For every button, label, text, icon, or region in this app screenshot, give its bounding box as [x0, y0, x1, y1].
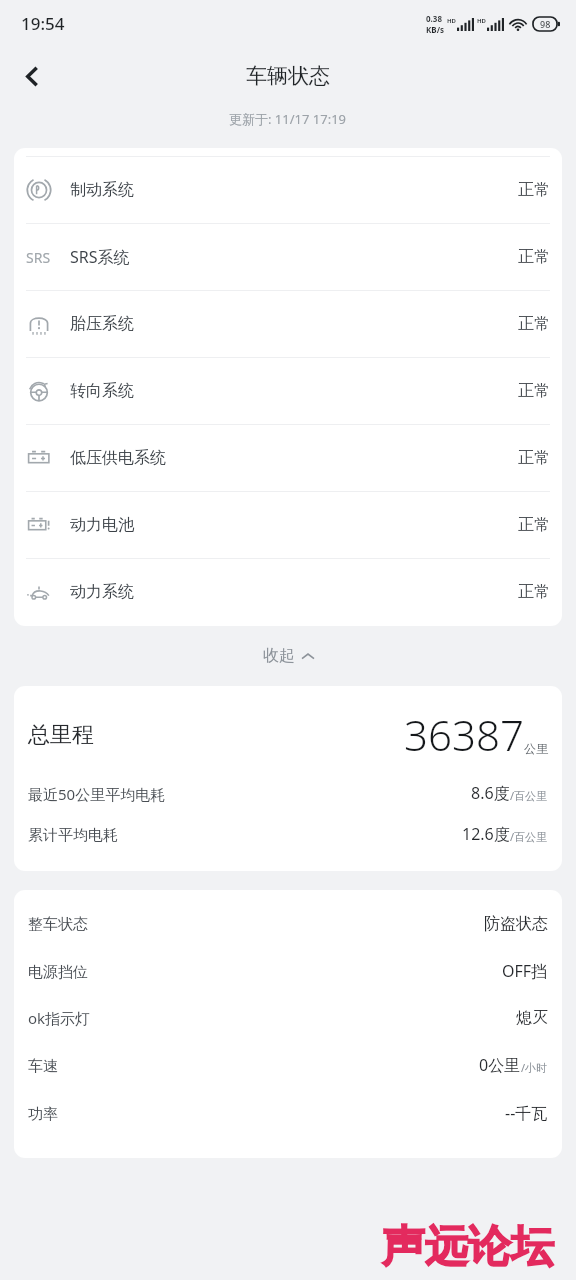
staticText: 更新于: 11/17 17:19 — [229, 110, 347, 128]
staticText: 正常 — [518, 515, 550, 535]
staticText: 整车状态 — [28, 915, 88, 934]
staticText: HD — [477, 17, 486, 25]
staticText: 功率 — [28, 1105, 58, 1124]
staticText: 正常 — [518, 582, 550, 602]
staticText: 36387 — [404, 706, 524, 763]
button[interactable]: Back — [7, 51, 57, 101]
button[interactable]: 转向系统 — [14, 358, 562, 424]
staticText: 正常 — [518, 247, 550, 267]
staticText: 最近50公里平均电耗 — [28, 784, 166, 804]
staticText: /百公里 — [510, 829, 548, 844]
staticText: HD — [447, 17, 456, 25]
button[interactable]: 收起 — [245, 637, 332, 675]
staticText: 正常 — [518, 180, 550, 200]
button[interactable]: 低压供电系统 — [14, 425, 562, 491]
staticText: 低压供电系统 — [70, 448, 166, 468]
button[interactable]: 动力系统 — [14, 559, 562, 625]
staticText: 正常 — [518, 314, 550, 334]
staticText: 12.6度 — [462, 823, 510, 845]
staticText: /百公里 — [510, 788, 548, 803]
staticText: 制动系统 — [70, 180, 134, 200]
staticText: OFF挡 — [502, 960, 548, 982]
staticText: 98 — [540, 18, 551, 30]
staticText: 声远论坛 — [382, 1220, 554, 1274]
staticText: 公里 — [524, 741, 548, 756]
staticText: 动力电池 — [70, 515, 134, 535]
button[interactable]: SRS — [14, 224, 562, 290]
staticText: /小时 — [521, 1060, 548, 1075]
button[interactable]: 最近50公里平均电耗 — [28, 782, 548, 804]
button[interactable]: ok指示灯 — [28, 1008, 548, 1028]
staticText: 0.38 — [426, 13, 442, 24]
staticText: 车速 — [28, 1057, 58, 1076]
staticText: 防盗状态 — [484, 914, 548, 934]
staticText: SRS系统 — [70, 246, 130, 268]
staticText: 电源挡位 — [28, 963, 88, 982]
button[interactable]: 整车状态 — [28, 914, 548, 934]
staticText: 动力系统 — [70, 582, 134, 602]
button[interactable]: 胎压系统 — [14, 291, 562, 357]
button[interactable]: 车速 — [28, 1054, 548, 1076]
staticText: 0公里 — [479, 1054, 521, 1076]
button[interactable]: 功率 — [28, 1102, 548, 1124]
staticText: 正常 — [518, 381, 550, 401]
staticText: ok指示灯 — [28, 1008, 91, 1028]
staticText: SRS — [26, 248, 51, 267]
button[interactable]: 制动系统 — [14, 157, 562, 223]
staticText: 熄灭 — [516, 1008, 548, 1028]
staticText: 收起 — [263, 646, 295, 666]
staticText: 19:54 — [21, 12, 65, 35]
staticText: KB/s — [426, 24, 444, 35]
staticText: 正常 — [518, 448, 550, 468]
staticText: 车辆状态 — [246, 63, 330, 89]
staticText: 8.6度 — [471, 782, 510, 804]
staticText: 转向系统 — [70, 381, 134, 401]
button[interactable]: 累计平均电耗 — [28, 823, 548, 845]
staticText: --千瓦 — [505, 1102, 548, 1124]
button[interactable]: 电源挡位 — [28, 960, 548, 982]
button[interactable]: 动力电池 — [14, 492, 562, 558]
staticText: 累计平均电耗 — [28, 826, 118, 845]
staticText: 总里程 — [28, 721, 94, 749]
staticText: 胎压系统 — [70, 314, 134, 334]
